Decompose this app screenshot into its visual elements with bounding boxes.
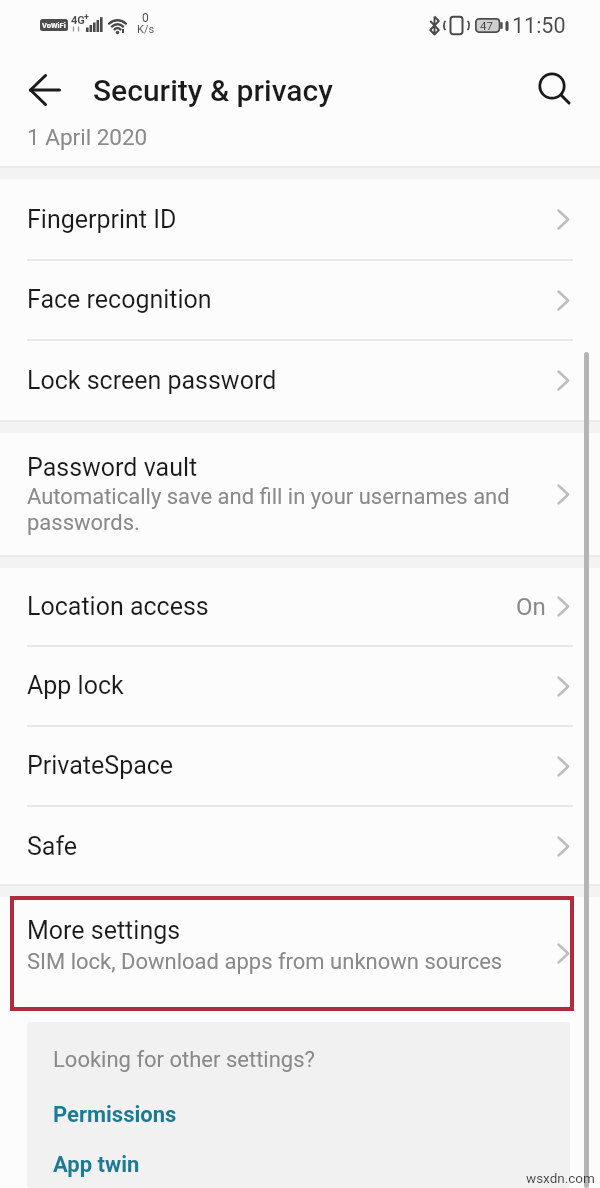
staticText: 1 April 2020 <box>27 124 148 150</box>
button[interactable] <box>16 62 74 118</box>
staticText: More settings <box>27 916 181 945</box>
staticText: Password vault <box>27 453 198 482</box>
staticText: Face recognition <box>27 285 212 314</box>
staticText: Looking for other settings? <box>53 1047 315 1073</box>
staticText: K/s <box>137 23 155 36</box>
staticText: Safe <box>27 832 78 861</box>
button[interactable]: Permissions <box>50 1090 250 1134</box>
button[interactable]: PrivateSpace <box>0 727 600 805</box>
button[interactable]: Password vault <box>0 433 600 555</box>
button[interactable] <box>527 62 583 118</box>
staticText: passwords. <box>27 510 140 536</box>
button[interactable]: Fingerprint ID <box>0 180 600 259</box>
staticText: App lock <box>27 671 124 700</box>
button[interactable]: Location access <box>0 568 600 645</box>
staticText: wsxdn.com <box>526 1170 595 1186</box>
staticText: Permissions <box>53 1102 177 1128</box>
staticText: 11:50 <box>512 13 566 38</box>
staticText: Lock screen password <box>27 366 277 395</box>
button[interactable]: Face recognition <box>0 261 600 339</box>
staticText: + <box>84 12 89 23</box>
staticText: Fingerprint ID <box>27 205 177 234</box>
staticText: On <box>516 593 546 621</box>
button[interactable]: App twin <box>50 1144 250 1188</box>
staticText: 0 <box>142 11 149 25</box>
button[interactable]: App lock <box>0 647 600 725</box>
button[interactable]: More settings <box>0 897 600 1010</box>
staticText: SIM lock, Download apps from unknown sou… <box>27 949 503 975</box>
staticText: Location access <box>27 592 209 621</box>
staticText: 4G <box>71 14 85 27</box>
button[interactable]: Lock screen password <box>0 341 600 420</box>
staticText: Security & privacy <box>93 73 333 108</box>
staticText: VoWiFi <box>42 21 66 30</box>
staticText: Automatically save and fill in your user… <box>27 484 510 510</box>
staticText: App twin <box>53 1152 140 1178</box>
button[interactable]: Safe <box>0 809 600 884</box>
staticText: 47 <box>480 19 493 32</box>
staticText: PrivateSpace <box>27 751 174 780</box>
